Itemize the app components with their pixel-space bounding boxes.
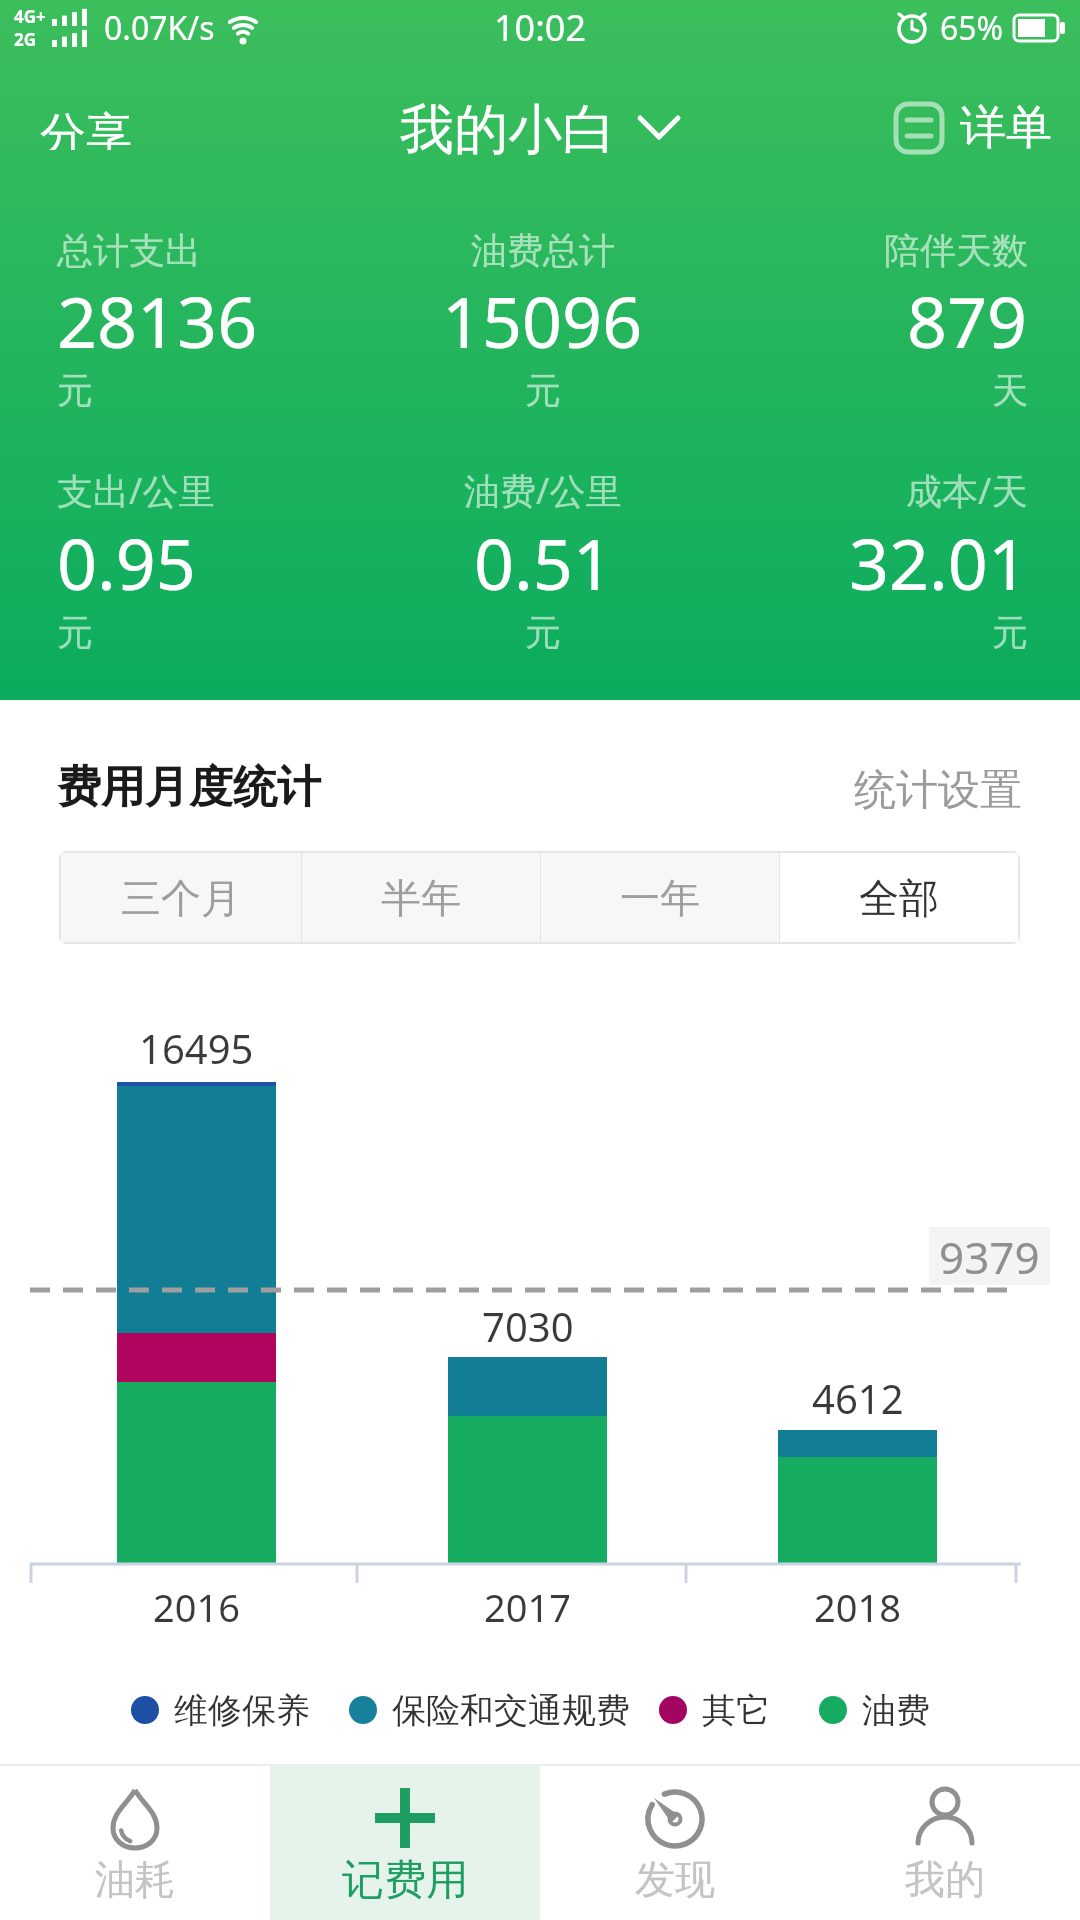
staticText: 维修保养	[174, 1689, 310, 1732]
staticText: 2016	[153, 1581, 240, 1633]
staticText: 油费	[862, 1689, 930, 1732]
staticText: 元	[525, 368, 561, 413]
staticText: 一年	[620, 873, 700, 923]
staticText: 元	[525, 610, 561, 655]
button[interactable]: 详单	[894, 99, 1052, 157]
staticText: 4G+	[14, 5, 46, 28]
button[interactable]: 全部	[780, 853, 1018, 942]
staticText: 元	[57, 368, 93, 413]
staticText: 总计支出	[57, 228, 201, 273]
staticText: 油耗	[95, 1854, 175, 1904]
staticText: 我的小白	[400, 96, 616, 160]
staticText: 我的	[905, 1854, 985, 1904]
button[interactable]: 半年	[302, 853, 540, 942]
staticText: 天	[992, 368, 1028, 413]
staticText: 其它	[702, 1689, 770, 1732]
staticText: 28136	[57, 273, 258, 368]
staticText: 记费用	[342, 1854, 468, 1907]
staticText: 2017	[484, 1581, 571, 1633]
button[interactable]: 记费用	[270, 1764, 540, 1920]
staticText: 16495	[139, 1021, 254, 1075]
staticText: 全部	[859, 873, 939, 923]
button[interactable]: 我的	[810, 1764, 1080, 1920]
button[interactable]: 我的小白	[400, 96, 680, 160]
staticText: 陪伴天数	[884, 228, 1028, 273]
button[interactable]: 发现	[540, 1764, 810, 1920]
staticText: 65%	[940, 6, 1004, 50]
staticText: 统计设置	[854, 764, 1022, 817]
staticText: 三个月	[121, 873, 241, 923]
staticText: 32.01	[849, 515, 1028, 610]
button[interactable]: 油耗	[0, 1764, 270, 1920]
staticText: 0.95	[57, 515, 196, 610]
staticText: 保险和交通规费	[392, 1689, 630, 1732]
staticText: 9379	[939, 1227, 1040, 1285]
staticText: 发现	[635, 1854, 715, 1904]
staticText: 半年	[381, 873, 461, 923]
staticText: 0.07K/s	[104, 6, 215, 50]
staticText: 油费总计	[471, 228, 615, 273]
button[interactable]: 三个月	[61, 853, 301, 942]
button[interactable]: 统计设置	[854, 764, 1022, 817]
staticText: 费用月度统计	[57, 760, 321, 815]
staticText: 2G	[14, 28, 37, 51]
staticText: 15096	[442, 273, 643, 368]
staticText: 2018	[814, 1581, 901, 1633]
staticText: 分享	[40, 106, 132, 150]
button[interactable]: 分享	[30, 96, 142, 160]
staticText: 879	[907, 273, 1028, 368]
staticText: 成本/天	[906, 466, 1028, 515]
staticText: 4612	[812, 1371, 904, 1425]
staticText: 油费/公里	[464, 466, 622, 515]
staticText: 支出/公里	[57, 466, 215, 515]
staticText: 0.51	[474, 515, 613, 610]
staticText: 10:02	[494, 3, 587, 52]
button[interactable]: 一年	[541, 853, 779, 942]
staticText: 元	[57, 610, 93, 655]
staticText: 元	[992, 610, 1028, 655]
staticText: 7030	[482, 1299, 574, 1353]
staticText: 详单	[960, 99, 1052, 157]
